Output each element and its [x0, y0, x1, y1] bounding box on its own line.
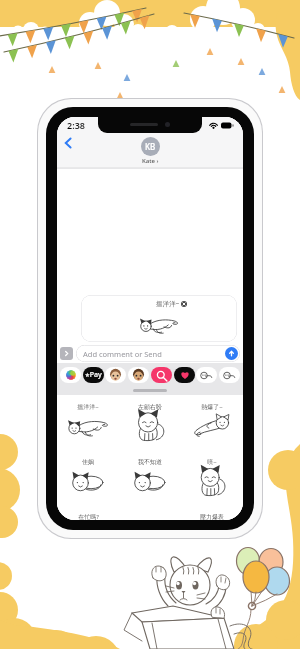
button[interactable]: 搵洋洋~: [57, 395, 119, 440]
staticText: KB: [145, 141, 156, 152]
button[interactable]: App: [128, 367, 149, 383]
button[interactable]: App: [60, 367, 81, 383]
button[interactable]: 佳姻: [57, 450, 119, 493]
button[interactable]: KB: [141, 137, 160, 165]
button[interactable]: App: [83, 367, 104, 383]
staticText: 左顧右盼: [138, 403, 162, 411]
button[interactable]: App: [105, 367, 126, 383]
button[interactable]: Add comment or Send: [76, 345, 240, 362]
staticText: 在忙嗎?: [78, 513, 99, 520]
button[interactable]: App: [219, 367, 240, 383]
staticText: 2:38: [67, 119, 85, 131]
button[interactable]: 左顧右盼: [119, 395, 181, 442]
staticText: 熱爆了~: [201, 403, 223, 411]
staticText: Pay: [85, 370, 102, 380]
button[interactable]: 熱爆了~: [181, 395, 243, 440]
button[interactable]: 壓力爆表: [181, 505, 243, 520]
staticText: 搵洋洋~: [77, 403, 99, 411]
button[interactable]: App: [174, 367, 195, 383]
button[interactable]: Apps: [60, 347, 73, 360]
button[interactable]: Send: [225, 347, 238, 360]
button[interactable]: Back: [60, 135, 76, 151]
button[interactable]: App: [196, 367, 217, 383]
button[interactable]: 搵洋洋~: [81, 295, 237, 342]
staticText: 我不知道: [138, 458, 162, 466]
button[interactable]: 我不知道: [119, 450, 181, 493]
button[interactable]: 喨~: [181, 450, 243, 497]
button[interactable]: 在忙嗎?: [57, 505, 119, 520]
staticText: 壓力爆表: [200, 513, 224, 520]
staticText: Add comment or Send: [83, 349, 162, 359]
staticText: 喨~: [207, 458, 217, 466]
staticText: 佳姻: [82, 458, 94, 466]
button[interactable]: App: [151, 367, 172, 383]
staticText: Kate ›: [142, 157, 159, 165]
staticText: 搵洋洋~: [156, 299, 180, 308]
